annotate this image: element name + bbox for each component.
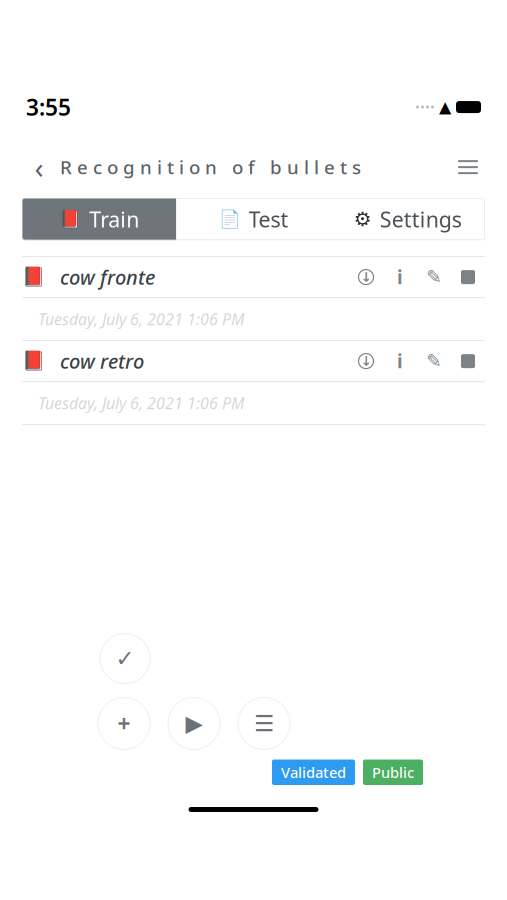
button[interactable]: 📄 <box>176 198 331 240</box>
button[interactable]: 📕 <box>22 257 485 297</box>
button[interactable]: 📕 <box>22 341 485 381</box>
button[interactable]: Select <box>451 260 485 294</box>
staticText: ☰ <box>254 711 274 736</box>
staticText: 📄 <box>218 209 240 229</box>
staticText: Tuesday, July 6, 2021 1:06 PM <box>38 308 244 330</box>
staticText: Validated <box>281 762 346 782</box>
staticText: R e c o g n i t i o n o f b u l l e t s <box>60 155 361 179</box>
staticText: 3:55 <box>26 92 71 122</box>
staticText: ↓ <box>360 269 371 285</box>
staticText: Train <box>89 205 139 233</box>
button[interactable]: Add <box>98 697 150 749</box>
button[interactable]: Download <box>349 344 383 378</box>
staticText: i <box>397 265 403 289</box>
staticText: ‹ <box>34 148 43 187</box>
staticText: Tuesday, July 6, 2021 1:06 PM <box>38 392 244 414</box>
staticText: Test <box>248 205 288 233</box>
staticText: ✎ <box>426 350 442 372</box>
button[interactable]: Select <box>451 344 485 378</box>
staticText: + <box>117 708 130 739</box>
staticText: 📕 <box>22 266 45 288</box>
button[interactable]: Information <box>383 260 417 294</box>
staticText: ▶ <box>185 711 202 736</box>
button[interactable]: Download <box>349 260 383 294</box>
button[interactable]: 📕 <box>22 198 176 240</box>
staticText: cow fronte <box>60 264 155 290</box>
button[interactable]: Edit <box>417 344 451 378</box>
button[interactable]: Confirm <box>100 633 150 683</box>
staticText: ▲ <box>439 98 451 116</box>
button[interactable]: Play <box>168 697 220 749</box>
button[interactable]: ⚙ <box>331 198 485 240</box>
staticText: 📕 <box>59 209 81 229</box>
staticText: Settings <box>380 205 462 233</box>
staticText: cow retro <box>60 348 144 374</box>
staticText: i <box>397 349 403 373</box>
button[interactable]: List <box>238 697 290 749</box>
button[interactable]: Menu <box>451 150 485 184</box>
staticText: ⚙ <box>354 208 372 230</box>
staticText: ✎ <box>426 266 442 288</box>
staticText: Public <box>372 762 414 782</box>
button[interactable]: Back <box>22 150 56 184</box>
staticText: ↓ <box>360 353 371 369</box>
button[interactable]: Edit <box>417 260 451 294</box>
staticText: ✓ <box>115 646 134 671</box>
staticText: 📕 <box>22 350 45 372</box>
button[interactable]: Information <box>383 344 417 378</box>
